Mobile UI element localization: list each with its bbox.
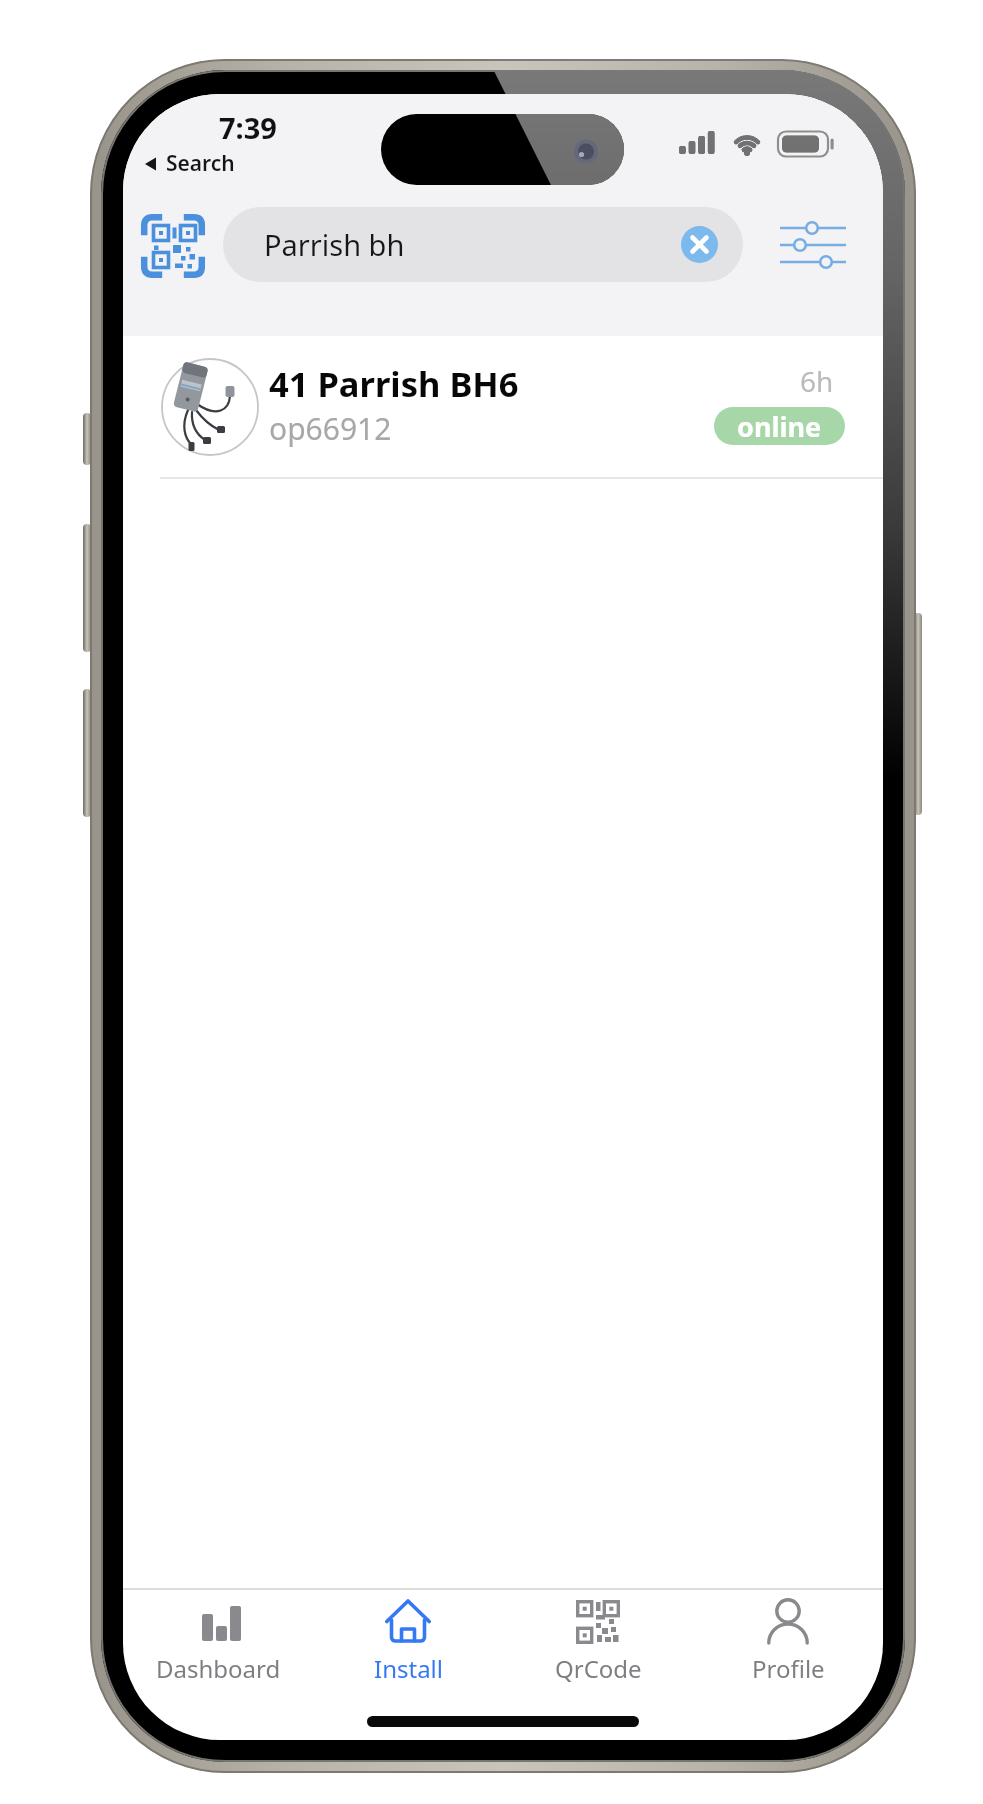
staticText: Install xyxy=(374,1652,443,1685)
button[interactable]: Search xyxy=(143,148,373,178)
button[interactable] xyxy=(769,215,857,275)
button[interactable] xyxy=(137,210,209,282)
staticText: 7:39 xyxy=(219,108,277,147)
staticText: online xyxy=(737,408,822,445)
staticText: 6h xyxy=(800,362,834,394)
button[interactable]: Parrish bh xyxy=(223,207,743,282)
button[interactable]: 41 Parrish BH6 xyxy=(123,336,883,478)
button[interactable]: Profile xyxy=(693,1594,883,1699)
button[interactable]: QrCode xyxy=(503,1594,693,1699)
button[interactable]: Dashboard xyxy=(123,1594,313,1699)
button[interactable]: Install xyxy=(313,1594,503,1699)
staticText: Dashboard xyxy=(156,1652,281,1685)
staticText: QrCode xyxy=(555,1652,642,1685)
staticText: Profile xyxy=(752,1652,825,1685)
staticText: Search xyxy=(166,149,235,178)
staticText: op66912 xyxy=(269,408,392,449)
staticText: 41 Parrish BH6 xyxy=(269,360,519,407)
staticText: Parrish bh xyxy=(264,225,405,264)
